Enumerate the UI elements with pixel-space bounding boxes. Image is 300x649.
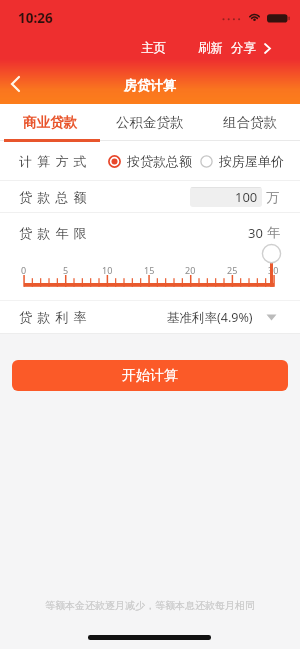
button[interactable]: 按房屋单价 xyxy=(200,153,284,169)
staticText: 按房屋单价 xyxy=(219,153,284,169)
staticText: 30 xyxy=(268,264,279,275)
button[interactable]: 贷款利率 xyxy=(0,301,300,333)
staticText: 贷款总额 xyxy=(19,189,92,205)
button[interactable]: 组合贷款 xyxy=(200,104,300,140)
staticText: 主页 xyxy=(141,40,166,56)
staticText: 贷款年限 xyxy=(19,225,92,241)
staticText: 商业贷款 xyxy=(23,114,77,131)
staticText: 15 xyxy=(144,264,155,275)
staticText: 组合贷款 xyxy=(223,114,277,131)
button[interactable]: 公积金贷款 xyxy=(100,104,200,140)
staticText: 贷款利率 xyxy=(19,309,92,325)
staticText: 100 xyxy=(235,188,258,206)
staticText: 20 xyxy=(185,264,196,275)
staticText: 刷新 xyxy=(198,40,223,56)
staticText: 年 xyxy=(267,224,280,240)
staticText: 10 xyxy=(102,264,113,275)
staticText: 10:26 xyxy=(18,9,53,27)
staticText: 等额本金还款逐月减少，等额本息还款每月相同 xyxy=(45,599,255,612)
staticText: 分享 xyxy=(231,40,256,56)
staticText: 基准利率(4.9%) xyxy=(167,309,253,326)
staticText: 30 xyxy=(248,224,267,242)
button[interactable]: 分享 xyxy=(219,36,267,60)
staticText: 万 xyxy=(266,189,279,205)
staticText: 开始计算 xyxy=(122,367,178,385)
staticText: 公积金贷款 xyxy=(116,114,184,131)
button[interactable] xyxy=(2,71,28,97)
button[interactable]: 按贷款总额 xyxy=(108,153,192,169)
staticText: 0 xyxy=(21,264,27,275)
button[interactable]: 开始计算 xyxy=(12,360,288,391)
staticText: 计算方式 xyxy=(19,153,92,169)
button[interactable]: 100 xyxy=(190,187,262,207)
button[interactable]: 刷新 xyxy=(186,36,234,60)
button[interactable]: 0 xyxy=(0,244,300,294)
button[interactable] xyxy=(256,36,278,60)
button[interactable]: 商业贷款 xyxy=(0,104,100,140)
staticText: 按贷款总额 xyxy=(127,153,192,169)
staticText: 25 xyxy=(227,264,238,275)
button[interactable]: 主页 xyxy=(129,36,177,60)
staticText: 5 xyxy=(63,264,69,275)
staticText: 房贷计算 xyxy=(124,77,176,93)
